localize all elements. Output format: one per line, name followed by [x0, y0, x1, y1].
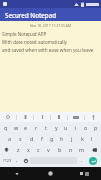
staticText: Nov 18, 2017 11:37:55 AM — [0, 23, 101, 28]
staticText: Simple Notepad APP — [2, 31, 47, 37]
button[interactable]: ?123 — [1, 155, 13, 166]
staticText: m — [79, 146, 85, 153]
button[interactable]: w — [11, 122, 21, 133]
staticText: and saved when with ease when you leave … — [2, 47, 99, 53]
staticText: , — [16, 157, 18, 164]
button[interactable]: r — [31, 122, 41, 133]
staticText: t — [45, 124, 47, 131]
staticText: d — [30, 135, 34, 142]
button[interactable]: Shift — [0, 144, 13, 155]
staticText: k — [81, 135, 84, 142]
staticText: r — [35, 124, 38, 131]
button[interactable]: g — [47, 133, 57, 144]
button[interactable]: Backspace — [87, 144, 101, 155]
button[interactable]: s — [15, 133, 26, 144]
button[interactable]: . — [77, 155, 86, 166]
button[interactable]: Menu — [85, 172, 89, 176]
staticText: o — [84, 124, 88, 131]
staticText: x — [27, 146, 30, 153]
button[interactable]: Suggestion 4 — [68, 112, 84, 122]
button[interactable]: z — [13, 144, 23, 155]
button[interactable]: l — [87, 133, 97, 144]
staticText: b — [58, 146, 62, 153]
button[interactable]: f — [37, 133, 47, 144]
staticText: q — [4, 124, 8, 131]
staticText: u — [64, 124, 68, 131]
button[interactable]: Back — [0, 167, 33, 180]
staticText: c — [37, 146, 40, 153]
staticText: ?123 — [3, 158, 12, 163]
button[interactable]: v — [43, 144, 54, 155]
staticText: j — [71, 135, 73, 142]
button[interactable]: Suggestion 1 — [17, 112, 33, 122]
staticText: g — [50, 135, 54, 142]
staticText: y — [55, 124, 58, 131]
staticText: l — [91, 135, 93, 142]
button[interactable]: u — [61, 122, 71, 133]
button[interactable]: , — [13, 155, 21, 166]
button[interactable]: k — [77, 133, 87, 144]
button[interactable]: h — [57, 133, 67, 144]
button[interactable]: Suggestion 3 — [51, 112, 67, 122]
button[interactable]: Suggestion 5 — [85, 112, 101, 122]
button[interactable]: q — [0, 122, 11, 133]
button[interactable]: m — [76, 144, 87, 155]
staticText: v — [47, 146, 50, 153]
staticText: h — [60, 135, 64, 142]
staticText: . — [81, 157, 83, 164]
button[interactable]: o — [81, 122, 91, 133]
staticText: i — [75, 124, 77, 131]
button[interactable]: Nov 18, 2017 11:37:55 AM — [0, 21, 101, 112]
staticText: e — [24, 124, 28, 131]
staticText: p — [94, 124, 98, 131]
button[interactable]: i — [71, 122, 81, 133]
button[interactable]: x — [23, 144, 33, 155]
staticText: w — [14, 124, 19, 131]
button[interactable]: t — [41, 122, 51, 133]
button[interactable]: d — [26, 133, 37, 144]
button[interactable]: a — [4, 133, 15, 144]
button[interactable]: n — [65, 144, 76, 155]
staticText: f — [41, 135, 43, 142]
button[interactable]: Home — [33, 167, 67, 180]
button[interactable]: Suggestion 0 — [0, 112, 16, 122]
button[interactable]: j — [67, 133, 77, 144]
staticText: a — [8, 135, 12, 142]
staticText: s — [19, 135, 22, 142]
button[interactable]: Secured Notepad — [0, 8, 101, 21]
button[interactable]: Enter — [87, 156, 99, 165]
button[interactable]: Emoji — [21, 155, 30, 166]
staticText: With date noted automatically — [2, 39, 67, 45]
staticText: n — [69, 146, 73, 153]
button[interactable]: e — [21, 122, 31, 133]
button[interactable]: Suggestion 2 — [34, 112, 50, 122]
button[interactable]: y — [51, 122, 61, 133]
button[interactable]: p — [91, 122, 101, 133]
staticText: Secured Notepad — [5, 11, 57, 19]
button[interactable]: b — [54, 144, 65, 155]
button[interactable]: c — [33, 144, 43, 155]
staticText: z — [17, 146, 20, 153]
